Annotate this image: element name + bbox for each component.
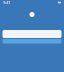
staticText: 9:41: [3, 0, 10, 5]
